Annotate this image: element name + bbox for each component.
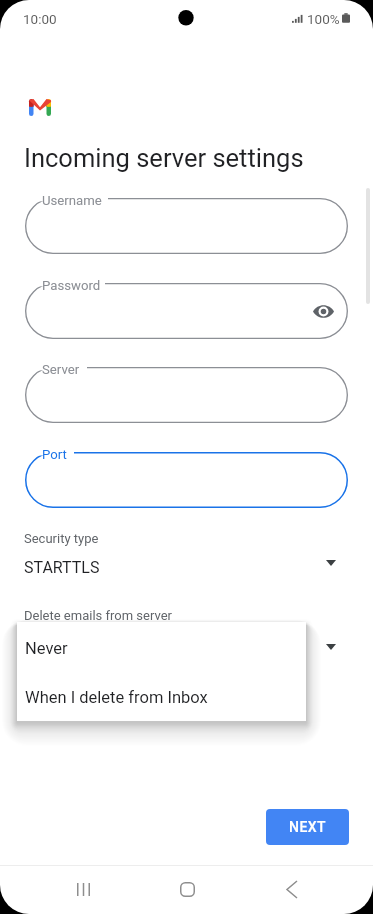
- button[interactable]: Show password: [310, 298, 336, 324]
- button[interactable]: When I delete from Inbox: [17, 674, 306, 721]
- staticText: Delete emails from server: [24, 608, 172, 623]
- staticText: Security type: [24, 531, 99, 546]
- staticText: Incoming server settings: [24, 143, 304, 173]
- button[interactable]: Username: [25, 198, 348, 254]
- staticText: Username: [42, 193, 102, 208]
- button[interactable]: Never: [17, 622, 306, 674]
- staticText: 10:00: [23, 11, 57, 27]
- button[interactable]: Home: [163, 865, 211, 913]
- staticText: Server: [42, 362, 80, 377]
- staticText: Port: [42, 447, 67, 462]
- staticText: STARTTLS: [24, 558, 100, 577]
- staticText: When I delete from Inbox: [25, 688, 208, 707]
- button[interactable]: Recent apps: [59, 865, 107, 913]
- staticText: NEXT: [289, 819, 327, 835]
- button[interactable]: Password: [25, 283, 348, 339]
- button[interactable]: Security type dropdown: [317, 549, 345, 577]
- button[interactable]: Delete emails from server dropdown: [317, 633, 345, 661]
- staticText: Never: [25, 639, 68, 658]
- button[interactable]: Back: [268, 865, 316, 913]
- button[interactable]: Server: [25, 367, 348, 423]
- staticText: 100%: [307, 11, 340, 27]
- button[interactable]: NEXT: [266, 809, 349, 845]
- button[interactable]: Port: [25, 452, 348, 508]
- staticText: Password: [42, 278, 101, 293]
